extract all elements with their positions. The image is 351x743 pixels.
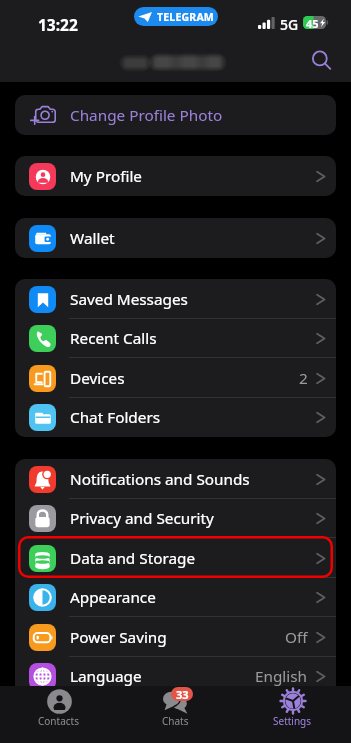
button[interactable]: Data and Storage — [15, 538, 336, 578]
button[interactable]: Recent Calls — [15, 319, 336, 358]
button[interactable]: Settings — [234, 686, 351, 743]
staticText: Contacts — [38, 714, 79, 728]
staticText: Chats — [162, 714, 189, 728]
staticText: 33 — [176, 687, 189, 701]
staticText: Privacy and Security — [70, 508, 214, 529]
staticText: Off — [285, 627, 308, 648]
staticText: Notifications and Sounds — [70, 469, 250, 490]
button[interactable]: Contacts — [0, 686, 117, 743]
button[interactable]: Saved Messages — [15, 279, 336, 319]
button[interactable]: Power Saving — [15, 617, 336, 657]
button[interactable]: Notifications and Sounds — [15, 459, 336, 499]
staticText: Data and Storage — [70, 548, 196, 569]
staticText: TELEGRAM — [157, 10, 214, 24]
staticText: My Profile — [70, 166, 142, 187]
button[interactable]: 33 — [117, 686, 234, 743]
staticText: Recent Calls — [70, 328, 157, 349]
staticText: Saved Messages — [70, 289, 188, 310]
button[interactable]: My Profile — [15, 156, 336, 196]
staticText: Change Profile Photo — [70, 105, 223, 126]
staticText: Language — [70, 666, 142, 687]
staticText: 45 — [306, 16, 319, 29]
button[interactable]: Wallet — [15, 218, 336, 258]
staticText: 2 — [299, 368, 308, 389]
button[interactable]: Devices — [15, 358, 336, 398]
button[interactable]: Language — [15, 657, 336, 696]
staticText: Devices — [70, 368, 125, 389]
staticText: Chat Folders — [70, 407, 161, 428]
button[interactable]: Appearance — [15, 578, 336, 617]
staticText: 13:22 — [38, 14, 78, 35]
staticText: 5G — [280, 15, 299, 34]
button[interactable]: Change Profile Photo — [15, 95, 336, 135]
staticText: Appearance — [70, 587, 156, 608]
button[interactable]: Privacy and Security — [15, 499, 336, 538]
staticText: Power Saving — [70, 627, 167, 648]
staticText: Wallet — [70, 228, 115, 249]
button[interactable]: Search — [306, 45, 336, 75]
staticText: English — [255, 666, 308, 687]
staticText: Settings — [273, 714, 312, 728]
button[interactable]: Chat Folders — [15, 398, 336, 437]
